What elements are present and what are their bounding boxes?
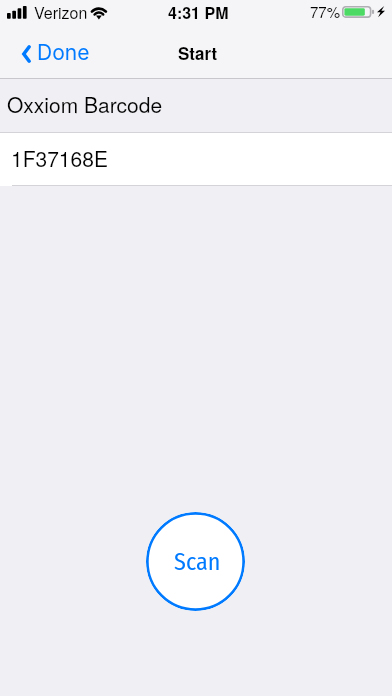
other: Battery 77 percent, charging: [342, 6, 376, 18]
staticText: Oxxiom Barcode: [7, 89, 163, 119]
staticText: Start: [178, 41, 218, 65]
button[interactable]: Scan: [146, 512, 245, 611]
other: Cellular signal strength: [7, 6, 27, 19]
button[interactable]: 1F37168E: [0, 133, 392, 186]
staticText: Done: [37, 40, 90, 65]
staticText: 1F37168E: [11, 143, 108, 173]
staticText: 4:31 PM: [168, 1, 229, 24]
button[interactable]: Done: [14, 37, 102, 71]
staticText: Verizon: [34, 1, 88, 24]
staticText: 77%: [310, 1, 341, 22]
staticText: Scan: [174, 548, 221, 577]
other: Wi-Fi connected: [90, 5, 110, 20]
